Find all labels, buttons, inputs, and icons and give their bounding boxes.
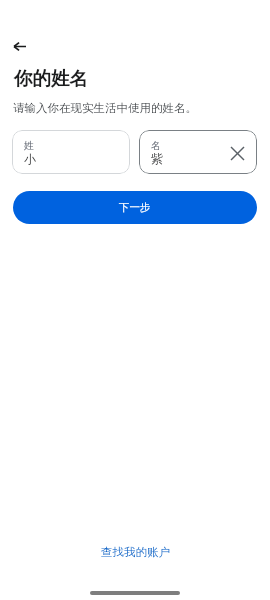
staticText: 你的姓名 (14, 67, 88, 90)
button[interactable]: 查找我的账户 (93, 541, 178, 563)
button[interactable]: Back (6, 32, 34, 60)
staticText: 请输入你在现实生活中使用的姓名。 (13, 101, 197, 115)
staticText: 姓 (24, 139, 34, 152)
staticText: 小 (24, 151, 36, 166)
button[interactable]: 姓 (12, 130, 130, 174)
button[interactable]: Clear text (224, 140, 250, 166)
staticText: 紫 (151, 151, 163, 166)
staticText: 下一步 (119, 201, 151, 214)
staticText: 名 (151, 139, 161, 152)
staticText: 查找我的账户 (101, 545, 170, 559)
button[interactable]: 名 (139, 130, 257, 174)
button[interactable]: 下一步 (13, 191, 257, 224)
